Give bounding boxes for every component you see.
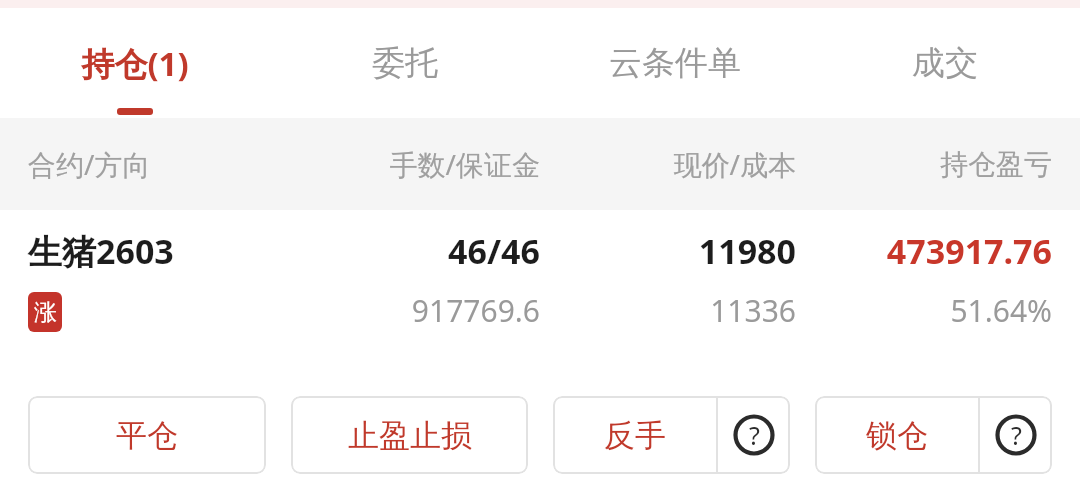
staticText: ? (749, 418, 760, 452)
button[interactable]: 成交 (810, 8, 1080, 118)
staticText: ? (1011, 418, 1022, 452)
staticText: 锁仓 (866, 416, 928, 455)
staticText: 合约/方向 (28, 145, 284, 183)
button[interactable]: 云条件单 (540, 8, 810, 118)
button[interactable]: 生猪2603 (0, 210, 1080, 385)
button[interactable]: 锁仓 (815, 396, 978, 474)
staticText: 持仓(1) (81, 41, 189, 86)
button[interactable]: 帮助说明 (980, 396, 1052, 474)
button[interactable]: 帮助说明 (718, 396, 790, 474)
staticText: 止盈止损 (348, 416, 472, 455)
staticText: 现价/成本 (540, 145, 796, 183)
staticText: 涨 (34, 298, 57, 327)
staticText: 51.64% (796, 290, 1052, 331)
button[interactable]: 委托 (270, 8, 540, 118)
staticText: 11980 (540, 228, 796, 274)
staticText: 反手 (604, 416, 666, 455)
staticText: 473917.76 (796, 228, 1052, 274)
button[interactable]: 反手 (553, 396, 716, 474)
staticText: 委托 (372, 42, 438, 84)
button[interactable]: 持仓(1) (0, 8, 270, 118)
button[interactable]: 止盈止损 (291, 396, 528, 474)
staticText: 手数/保证金 (284, 145, 540, 183)
button[interactable]: 平仓 (28, 396, 266, 474)
staticText: 917769.6 (284, 290, 540, 331)
staticText: 46/46 (284, 228, 540, 274)
staticText: 云条件单 (609, 42, 741, 84)
staticText: 持仓盈亏 (796, 147, 1052, 182)
staticText: 11336 (540, 290, 796, 331)
staticText: 平仓 (116, 416, 178, 455)
staticText: 成交 (912, 42, 978, 84)
staticText: 生猪2603 (28, 228, 284, 274)
